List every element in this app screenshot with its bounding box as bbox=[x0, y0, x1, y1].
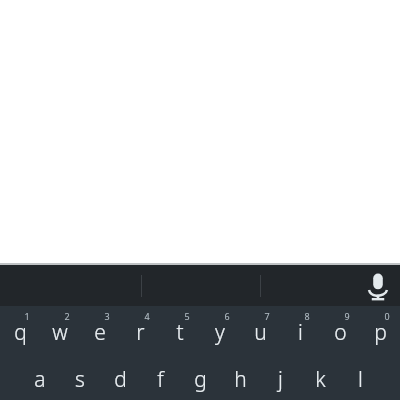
staticText: j bbox=[278, 365, 283, 394]
staticText: h bbox=[234, 365, 247, 394]
staticText: l bbox=[358, 365, 363, 394]
button[interactable]: 7 bbox=[240, 306, 280, 358]
staticText: k bbox=[315, 365, 326, 394]
staticText: o bbox=[334, 318, 347, 347]
button[interactable]: s bbox=[60, 358, 100, 400]
button[interactable]: f bbox=[140, 358, 180, 400]
button[interactable]: g bbox=[180, 358, 220, 400]
staticText: 4 bbox=[144, 310, 150, 322]
staticText: y bbox=[215, 318, 225, 347]
button[interactable]: l bbox=[340, 358, 380, 400]
staticText: r bbox=[136, 318, 145, 347]
staticText: 2 bbox=[64, 310, 70, 322]
staticText: s bbox=[75, 365, 85, 394]
button[interactable]: 8 bbox=[280, 306, 320, 358]
button[interactable]: a bbox=[20, 358, 60, 400]
staticText: e bbox=[94, 318, 106, 347]
button[interactable]: 9 bbox=[320, 306, 360, 358]
staticText: 5 bbox=[184, 310, 190, 322]
staticText: 0 bbox=[384, 310, 390, 322]
staticText: 1 bbox=[24, 310, 30, 322]
button[interactable]: 6 bbox=[200, 306, 240, 358]
staticText: i bbox=[298, 318, 303, 347]
staticText: w bbox=[52, 318, 68, 347]
button[interactable]: 0 bbox=[360, 306, 400, 358]
button[interactable]: d bbox=[100, 358, 140, 400]
button[interactable]: k bbox=[300, 358, 340, 400]
button[interactable]: 2 bbox=[40, 306, 80, 358]
staticText: d bbox=[114, 365, 127, 394]
staticText: g bbox=[194, 365, 207, 394]
staticText: 9 bbox=[344, 310, 350, 322]
staticText: 3 bbox=[104, 310, 110, 322]
staticText: 6 bbox=[224, 310, 230, 322]
staticText: 8 bbox=[304, 310, 310, 322]
button[interactable]: 4 bbox=[120, 306, 160, 358]
staticText: t bbox=[176, 318, 184, 347]
button[interactable]: j bbox=[260, 358, 300, 400]
staticText: q bbox=[14, 318, 27, 347]
staticText: p bbox=[374, 318, 387, 347]
staticText: a bbox=[34, 365, 46, 394]
button[interactable]: 1 bbox=[0, 306, 40, 358]
staticText: f bbox=[157, 365, 164, 394]
button[interactable]: 3 bbox=[80, 306, 120, 358]
button[interactable]: h bbox=[220, 358, 260, 400]
staticText: 7 bbox=[264, 310, 270, 322]
button[interactable]: 5 bbox=[160, 306, 200, 358]
staticText: u bbox=[254, 318, 267, 347]
button[interactable]: Voice input bbox=[357, 265, 399, 306]
